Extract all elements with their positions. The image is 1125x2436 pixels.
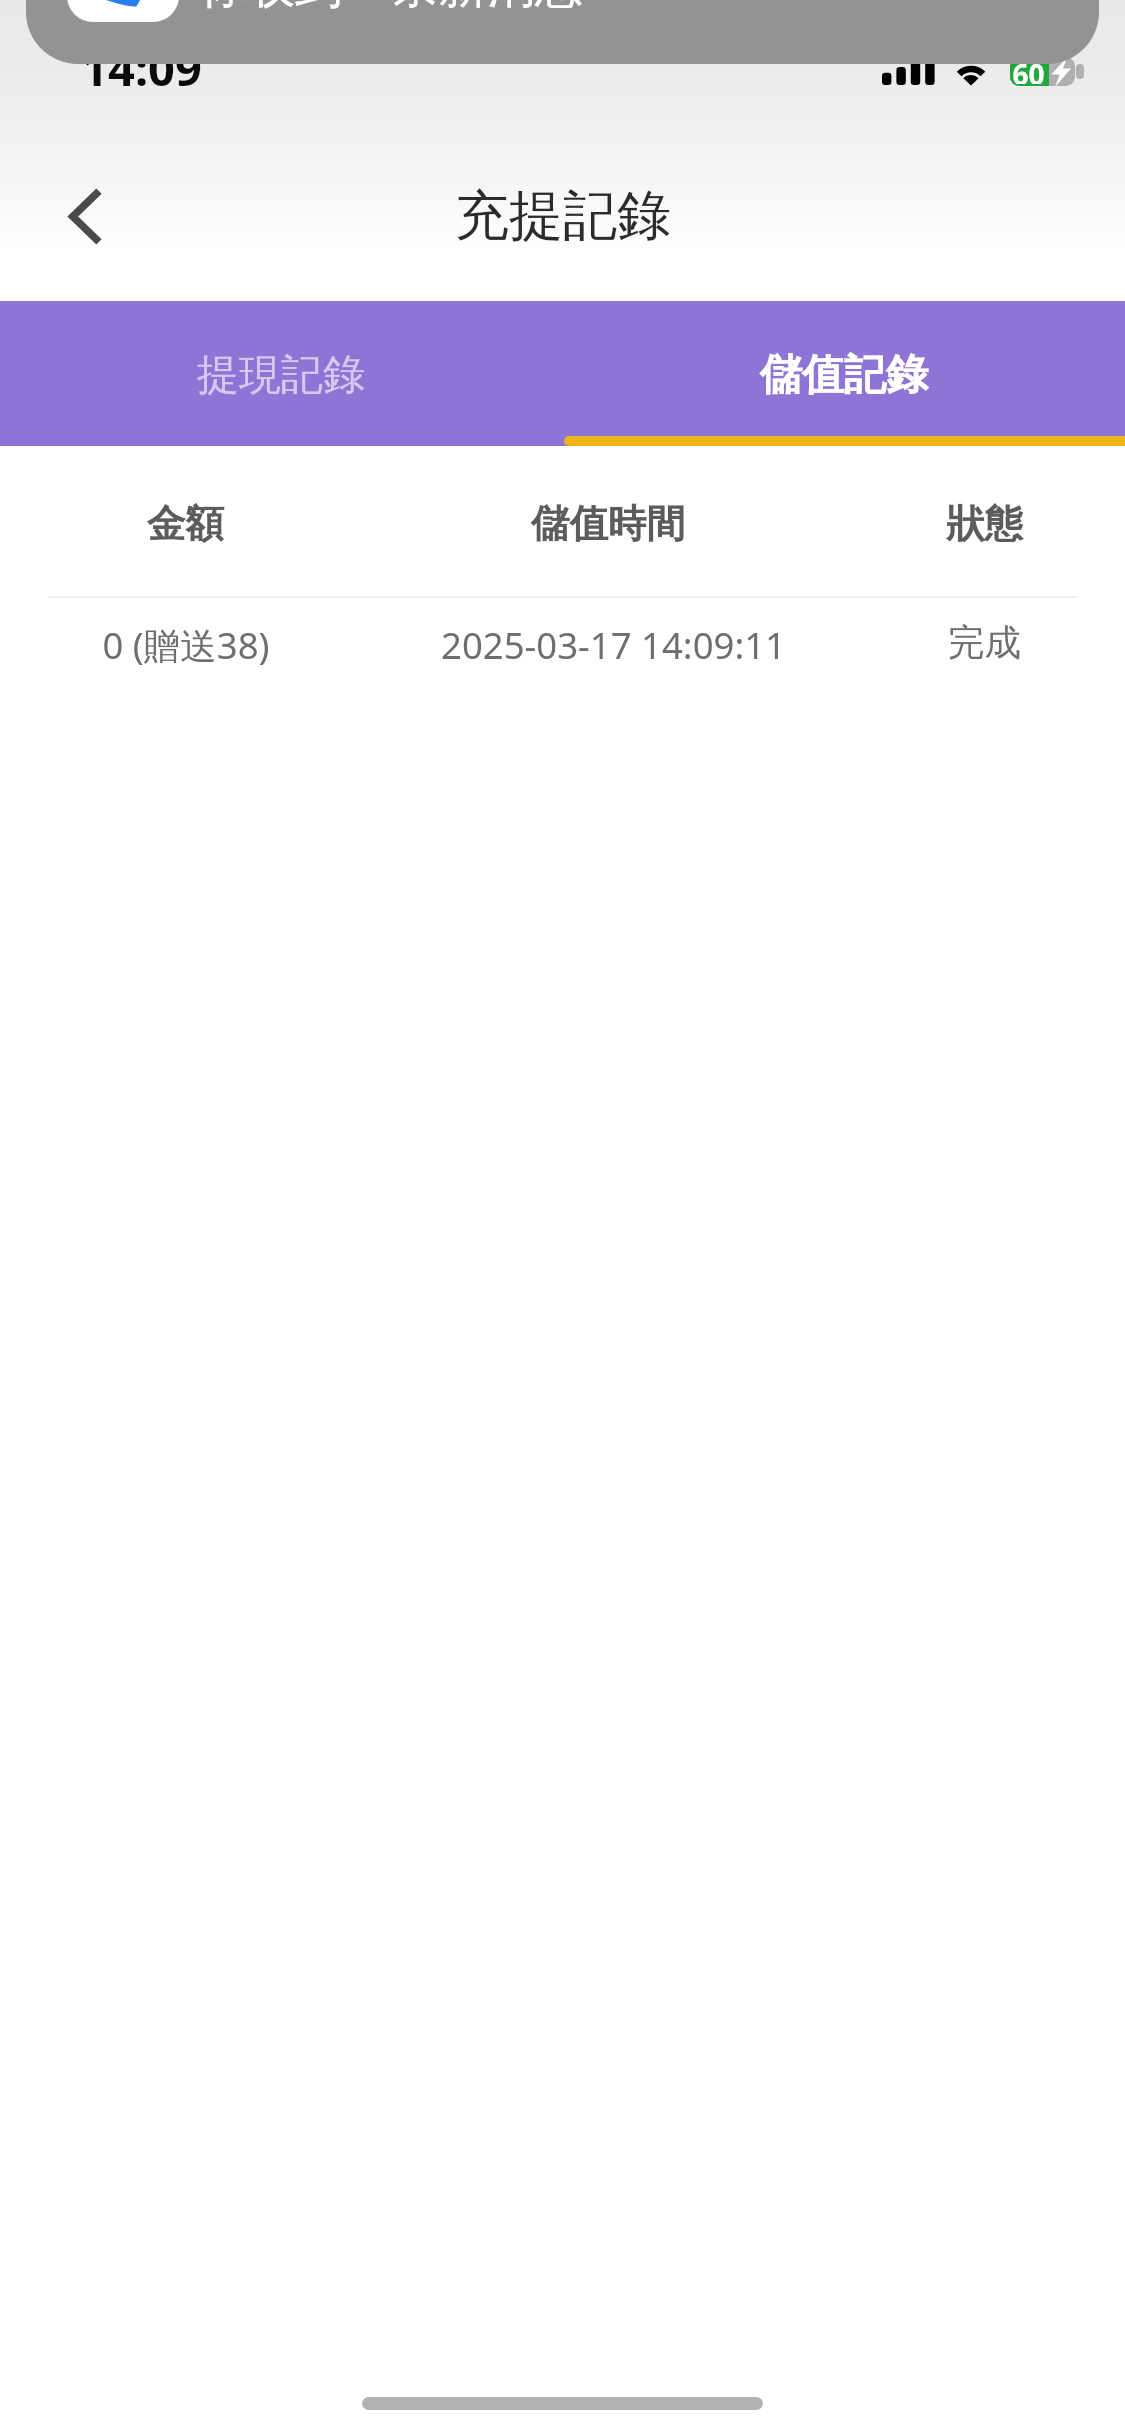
staticText: 0 (贈送38)	[102, 620, 270, 670]
staticText: 2025-03-17 14:09:11	[441, 620, 786, 670]
staticText: 狀態	[946, 500, 1023, 549]
staticText: 提現記錄	[197, 349, 365, 402]
staticText: 完成	[948, 620, 1021, 666]
staticText: 儲值時間	[531, 500, 685, 549]
staticText: 60	[1012, 57, 1045, 84]
button[interactable]: 0 (贈送38)	[0, 595, 1125, 695]
staticText: 儲值記錄	[760, 349, 928, 402]
button[interactable]: Back	[36, 168, 132, 264]
staticText: 金額	[147, 500, 224, 549]
staticText: 14:09	[81, 36, 202, 100]
button[interactable]: 儲值記錄	[562, 301, 1125, 446]
button[interactable]: Notification	[26, 0, 1099, 64]
staticText: 你收到一条新消息	[199, 0, 583, 16]
staticText: 充提記錄	[455, 182, 671, 250]
button[interactable]: 提現記錄	[0, 301, 562, 446]
